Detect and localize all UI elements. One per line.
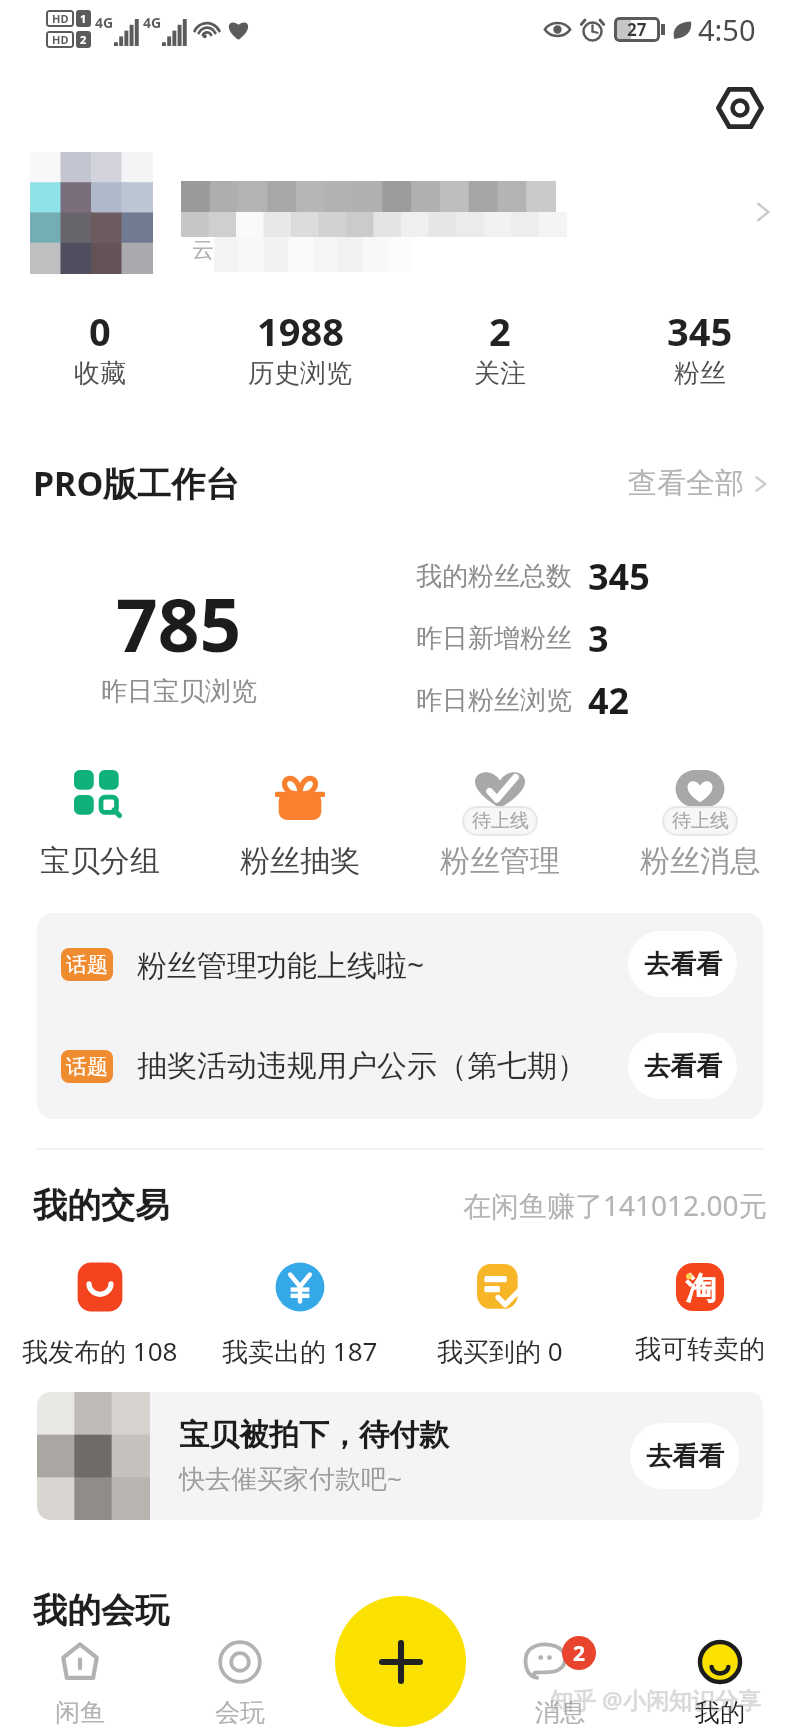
staticText: 关注 bbox=[474, 357, 526, 390]
staticText: 会玩 bbox=[215, 1697, 265, 1728]
staticText: 去看看 bbox=[644, 1050, 722, 1083]
staticText: 1 bbox=[80, 11, 87, 26]
staticText: 快去催买家付款吧~ bbox=[179, 1460, 402, 1496]
staticText: 收藏 bbox=[74, 357, 126, 390]
staticText: 1988 bbox=[257, 305, 344, 357]
staticText: 2 bbox=[489, 305, 511, 357]
button[interactable]: Post new item bbox=[335, 1596, 466, 1727]
button[interactable]: Settings bbox=[711, 79, 769, 137]
button[interactable]: 查看全部 bbox=[628, 465, 774, 502]
button[interactable]: 宝贝分组 bbox=[0, 758, 200, 880]
staticText: 昨日粉丝浏览 bbox=[416, 684, 572, 717]
staticText: 粉丝管理 bbox=[440, 842, 560, 880]
button[interactable]: 云 bbox=[0, 150, 800, 274]
button[interactable]: 2 bbox=[480, 1624, 640, 1728]
staticText: 待上线 bbox=[472, 809, 529, 833]
staticText: 知乎 @小闲知识分享 bbox=[550, 1684, 761, 1715]
button[interactable]: 1988 bbox=[200, 305, 400, 390]
staticText: 待上线 bbox=[672, 809, 729, 833]
staticText: 345 bbox=[667, 305, 733, 357]
staticText: 27 bbox=[627, 18, 647, 41]
staticText: 我的粉丝总数 bbox=[416, 560, 572, 593]
button[interactable]: 去看看 bbox=[628, 1033, 737, 1099]
staticText: 4G bbox=[95, 13, 114, 32]
button[interactable]: 我卖出的 187 bbox=[200, 1261, 400, 1369]
staticText: 0 bbox=[89, 305, 111, 357]
staticText: HD bbox=[52, 11, 69, 26]
button[interactable]: 去看看 bbox=[630, 1423, 739, 1489]
staticText: 我卖出的 187 bbox=[222, 1333, 378, 1369]
staticText: 785 bbox=[116, 574, 242, 673]
staticText: 2 bbox=[80, 32, 87, 47]
button[interactable]: 我买到的 0 bbox=[400, 1261, 600, 1369]
button[interactable]: 话题 bbox=[37, 1015, 763, 1117]
button[interactable]: 待上线 bbox=[600, 758, 800, 880]
staticText: 我发布的 108 bbox=[22, 1333, 178, 1369]
staticText: 云 bbox=[192, 236, 214, 264]
button[interactable]: 去看看 bbox=[628, 931, 737, 997]
button[interactable]: 待上线 bbox=[400, 758, 600, 880]
staticText: 去看看 bbox=[646, 1440, 724, 1473]
button[interactable]: 淘 bbox=[600, 1261, 800, 1366]
staticText: 话题 bbox=[66, 1054, 108, 1080]
button[interactable]: 会玩 bbox=[160, 1624, 320, 1728]
staticText: PRO版工作台 bbox=[33, 460, 240, 506]
staticText: 我可转卖的 bbox=[635, 1333, 765, 1366]
staticText: 粉丝管理功能上线啦~ bbox=[137, 944, 425, 985]
button[interactable]: 0 bbox=[0, 305, 200, 390]
staticText: 宝贝分组 bbox=[40, 842, 160, 880]
staticText: 昨日新增粉丝 bbox=[416, 622, 572, 655]
button[interactable]: 我发布的 108 bbox=[0, 1261, 200, 1369]
staticText: 昨日宝贝浏览 bbox=[101, 675, 257, 708]
staticText: 宝贝被拍下，待付款 bbox=[179, 1416, 449, 1454]
button[interactable]: 粉丝抽奖 bbox=[200, 758, 400, 880]
staticText: 粉丝抽奖 bbox=[240, 842, 360, 880]
button[interactable]: 我的 bbox=[640, 1624, 800, 1728]
staticText: 3 bbox=[588, 614, 609, 663]
staticText: 淘 bbox=[685, 1269, 716, 1308]
button[interactable]: 闲鱼 bbox=[0, 1624, 160, 1728]
button[interactable]: 话题 bbox=[37, 913, 763, 1015]
staticText: 消息 bbox=[535, 1697, 585, 1728]
staticText: 话题 bbox=[66, 952, 108, 978]
staticText: HD bbox=[52, 32, 69, 47]
staticText: 闲鱼 bbox=[55, 1697, 105, 1728]
staticText: 我买到的 0 bbox=[437, 1333, 563, 1369]
button[interactable]: 宝贝被拍下，待付款 bbox=[37, 1392, 763, 1520]
staticText: 我的 bbox=[695, 1697, 745, 1728]
staticText: 我的会玩 bbox=[33, 1589, 169, 1632]
staticText: 我的交易 bbox=[33, 1184, 169, 1227]
staticText: 2 bbox=[573, 1639, 586, 1668]
staticText: 4G bbox=[143, 13, 162, 32]
staticText: 4:50 bbox=[698, 10, 756, 49]
staticText: 抽奖活动违规用户公示（第七期） bbox=[137, 1047, 587, 1085]
button[interactable]: 2 bbox=[400, 305, 600, 390]
staticText: 历史浏览 bbox=[248, 357, 352, 390]
staticText: 查看全部 bbox=[628, 465, 744, 502]
staticText: 粉丝消息 bbox=[640, 842, 760, 880]
staticText: 42 bbox=[588, 676, 630, 725]
button[interactable]: 345 bbox=[600, 305, 800, 390]
staticText: 粉丝 bbox=[674, 357, 726, 390]
staticText: 345 bbox=[588, 552, 650, 601]
staticText: 去看看 bbox=[644, 948, 722, 981]
staticText: 在闲鱼赚了141012.00元 bbox=[463, 1186, 767, 1224]
